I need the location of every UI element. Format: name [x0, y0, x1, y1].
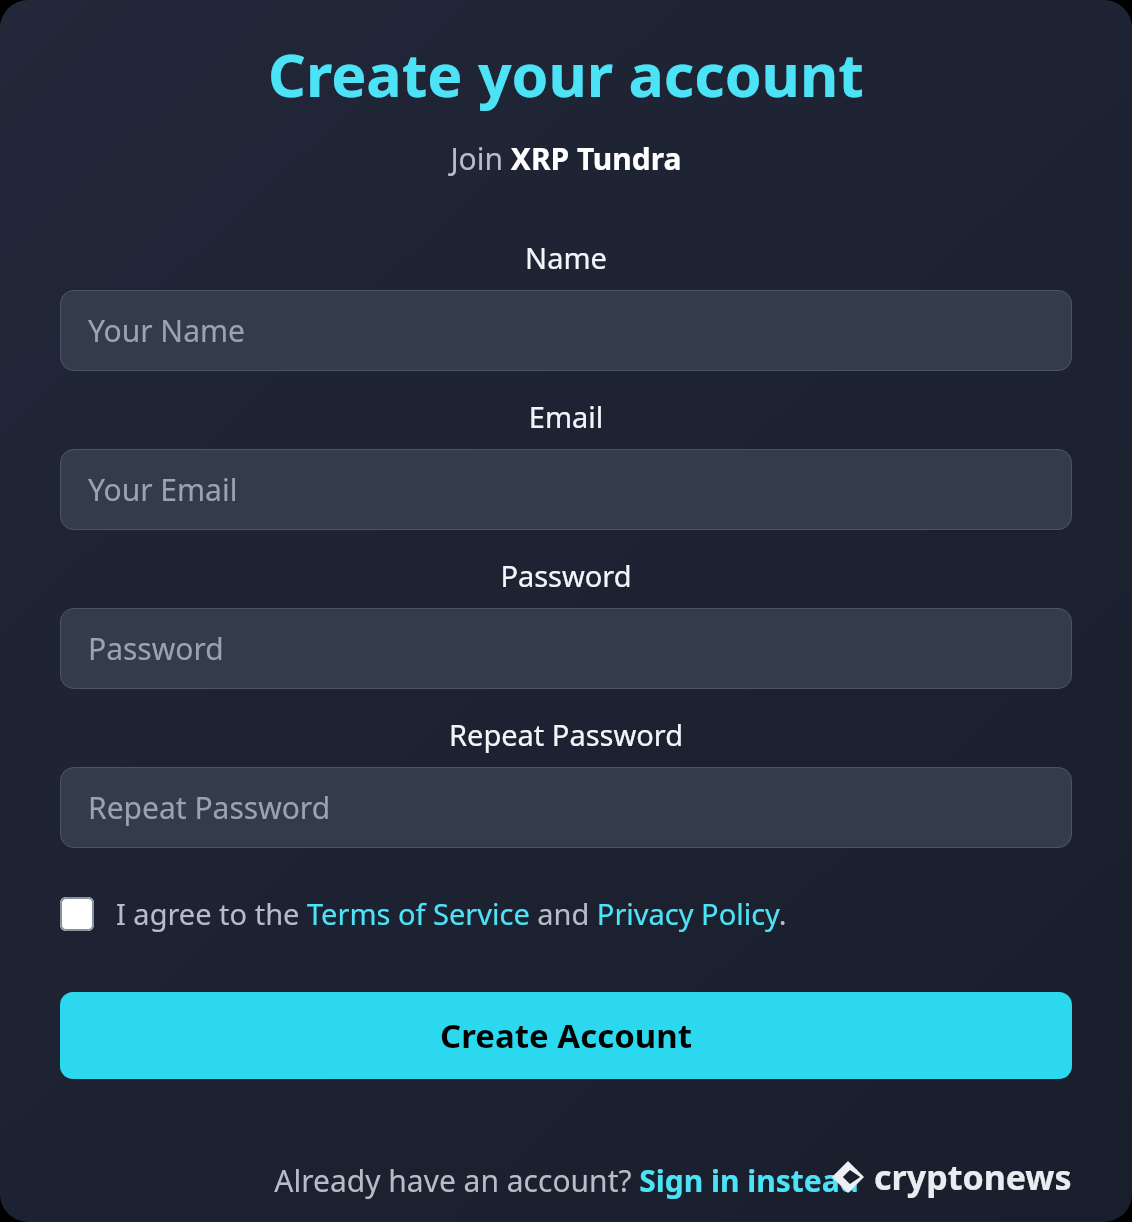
staticText: Email — [60, 397, 1072, 436]
staticText: Create your account — [60, 34, 1072, 114]
staticText: I agree to the Terms of Service and Priv… — [116, 894, 787, 933]
button[interactable]: Your Email — [60, 449, 1072, 530]
staticText: Name — [60, 238, 1072, 277]
button[interactable]: I agree to the Terms of Service and Priv… — [60, 894, 1072, 933]
button[interactable]: Already have an account? Sign in instead — [274, 1160, 859, 1201]
staticText: cryptonews — [874, 1154, 1072, 1200]
button[interactable]: Repeat Password — [60, 767, 1072, 848]
staticText: Repeat Password — [88, 787, 331, 828]
staticText: Join XRP Tundra — [60, 138, 1072, 179]
staticText: Your Email — [88, 469, 238, 510]
staticText: Create Account — [440, 1013, 693, 1058]
staticText: Already have an account? Sign in instead — [274, 1160, 859, 1201]
button[interactable]: Your Name — [60, 290, 1072, 371]
button[interactable]: Password — [60, 608, 1072, 689]
staticText: Password — [60, 556, 1072, 595]
button[interactable]: cryptonews — [832, 1154, 1072, 1200]
staticText: Repeat Password — [60, 715, 1072, 754]
staticText: Your Name — [88, 310, 245, 351]
staticText: Password — [88, 628, 224, 669]
button[interactable]: Create Account — [60, 992, 1072, 1079]
